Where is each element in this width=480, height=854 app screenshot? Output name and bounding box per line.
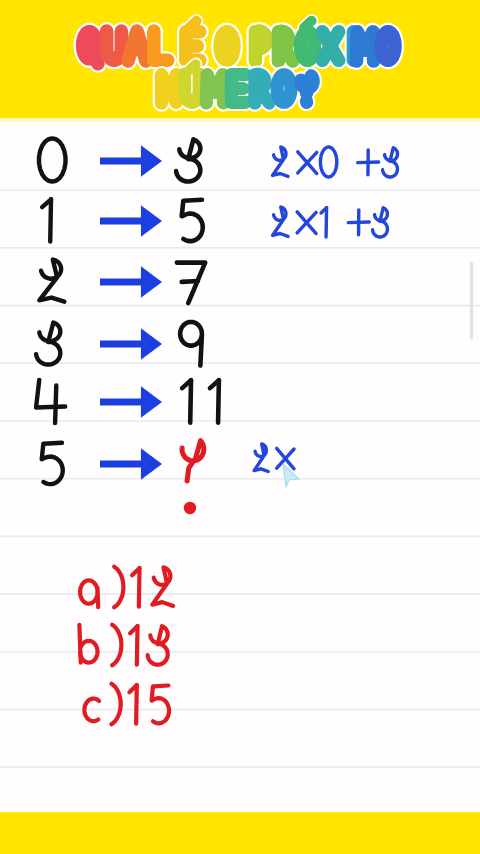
button[interactable]: Quiz: qual é o próximo número: [0, 0, 480, 854]
